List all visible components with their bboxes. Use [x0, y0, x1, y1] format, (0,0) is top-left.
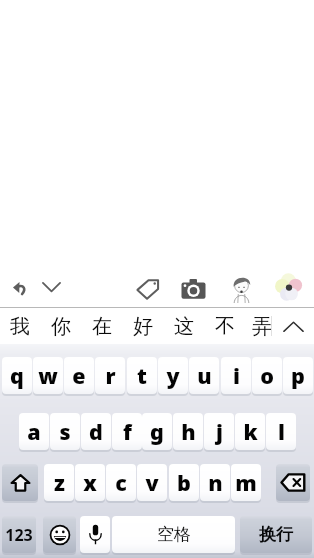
- staticText: y: [166, 361, 180, 390]
- button[interactable]: i: [221, 357, 251, 394]
- staticText: 这: [174, 314, 194, 339]
- button[interactable]: c: [106, 464, 136, 501]
- staticText: d: [89, 417, 103, 446]
- staticText: j: [216, 417, 223, 446]
- button[interactable]: e: [64, 357, 94, 394]
- button[interactable]: v: [137, 464, 167, 501]
- button[interactable]: Voice input: [80, 516, 110, 553]
- staticText: e: [72, 361, 86, 390]
- staticText: s: [59, 417, 71, 446]
- staticText: r: [105, 361, 116, 390]
- button[interactable]: Hide keyboard: [33, 265, 69, 308]
- button[interactable]: n: [200, 464, 230, 501]
- button[interactable]: f: [112, 413, 142, 450]
- staticText: v: [145, 468, 159, 497]
- button[interactable]: h: [173, 413, 203, 450]
- button[interactable]: y: [158, 357, 188, 394]
- button[interactable]: s: [50, 413, 80, 450]
- staticText: o: [260, 361, 274, 390]
- staticText: u: [197, 361, 212, 390]
- staticText: 换行: [259, 524, 293, 545]
- staticText: h: [181, 417, 196, 446]
- button[interactable]: x: [75, 464, 105, 501]
- button[interactable]: 我: [0, 308, 40, 344]
- button[interactable]: k: [235, 413, 265, 450]
- button[interactable]: u: [189, 357, 219, 394]
- button[interactable]: More candidates: [272, 308, 314, 344]
- button[interactable]: Shift: [2, 464, 38, 501]
- staticText: f: [123, 417, 132, 446]
- staticText: t: [137, 361, 147, 390]
- staticText: 我: [10, 314, 30, 339]
- button[interactable]: 不: [205, 308, 245, 344]
- button[interactable]: Undo: [1, 266, 37, 309]
- button[interactable]: p: [283, 357, 313, 394]
- staticText: k: [243, 417, 258, 446]
- staticText: 你: [51, 314, 71, 339]
- staticText: x: [83, 468, 97, 497]
- staticText: 不: [215, 314, 235, 339]
- button[interactable]: 你: [41, 308, 81, 344]
- button[interactable]: 好: [123, 308, 163, 344]
- staticText: a: [27, 417, 41, 446]
- button[interactable]: Emoji: [43, 516, 76, 553]
- button[interactable]: w: [33, 357, 63, 394]
- staticText: 123: [5, 524, 33, 546]
- button[interactable]: 空格: [112, 516, 235, 553]
- staticText: i: [233, 361, 240, 390]
- staticText: z: [54, 468, 65, 497]
- staticText: 弄: [252, 314, 272, 339]
- button[interactable]: j: [204, 413, 234, 450]
- staticText: q: [10, 361, 24, 390]
- button[interactable]: r: [95, 357, 125, 394]
- staticText: 空格: [157, 524, 191, 545]
- button[interactable]: o: [252, 357, 282, 394]
- button[interactable]: 换行: [240, 516, 312, 553]
- staticText: g: [150, 417, 164, 446]
- button[interactable]: 这: [164, 308, 204, 344]
- button[interactable]: g: [142, 413, 172, 450]
- staticText: p: [291, 361, 305, 390]
- button[interactable]: Backspace: [276, 464, 310, 501]
- staticText: c: [115, 468, 127, 497]
- button[interactable]: b: [169, 464, 199, 501]
- button[interactable]: 在: [82, 308, 122, 344]
- button[interactable]: 123: [2, 516, 36, 553]
- button[interactable]: d: [81, 413, 111, 450]
- button[interactable]: 弄: [242, 308, 282, 344]
- staticText: b: [177, 468, 191, 497]
- button[interactable]: Tag: [130, 267, 166, 310]
- staticText: m: [235, 468, 257, 497]
- button[interactable]: Sticker: [223, 267, 259, 310]
- button[interactable]: z: [44, 464, 74, 501]
- button[interactable]: a: [19, 413, 49, 450]
- staticText: 在: [92, 314, 112, 339]
- button[interactable]: Theme: [271, 265, 307, 308]
- button[interactable]: Camera: [175, 267, 211, 310]
- button[interactable]: q: [2, 357, 32, 394]
- staticText: w: [38, 361, 58, 390]
- staticText: l: [278, 417, 285, 446]
- button[interactable]: t: [127, 357, 157, 394]
- button[interactable]: l: [266, 413, 296, 450]
- button[interactable]: m: [231, 464, 261, 501]
- staticText: n: [208, 468, 223, 497]
- staticText: 好: [133, 314, 153, 339]
